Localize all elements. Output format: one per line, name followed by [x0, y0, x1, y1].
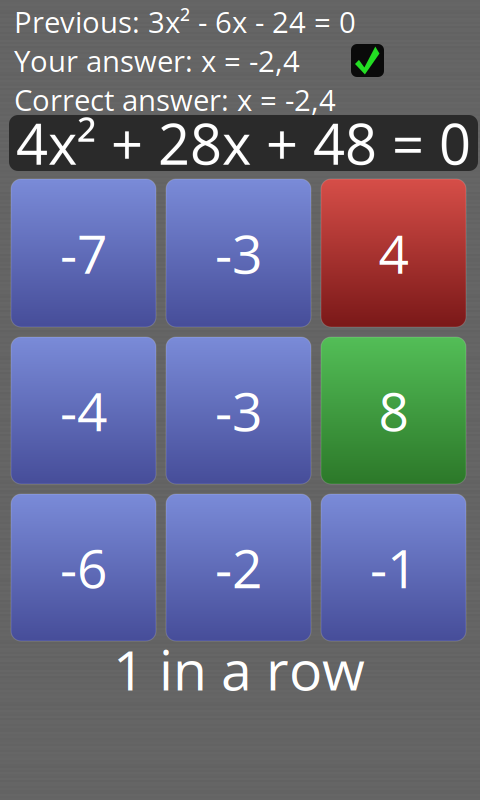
button[interactable]: -3 [166, 179, 311, 327]
staticText: -1 [370, 531, 417, 604]
button[interactable]: -7 [11, 179, 156, 327]
staticText: Previous: 3x² - 6x - 24 = 0 [14, 1, 356, 41]
staticText: -7 [60, 217, 107, 289]
staticText: 8 [378, 374, 408, 447]
button[interactable]: -1 [321, 494, 466, 641]
button[interactable]: -2 [166, 494, 311, 641]
staticText: -3 [215, 374, 262, 447]
staticText: 4x² + 28x + 48 = 0 [16, 105, 471, 181]
staticText: -4 [60, 374, 107, 447]
staticText: 1 in a row [113, 631, 365, 707]
button[interactable]: 4 [321, 179, 466, 327]
button[interactable]: 8 [321, 337, 466, 484]
button[interactable]: -3 [166, 337, 311, 484]
staticText: 4 [378, 217, 408, 289]
button[interactable]: -6 [11, 494, 156, 641]
staticText: -2 [215, 531, 262, 604]
staticText: Your answer: x = -2,4 [14, 40, 300, 80]
staticText: -3 [215, 217, 262, 289]
button[interactable]: -4 [11, 337, 156, 484]
staticText: -6 [60, 531, 107, 604]
staticText: Correct answer: x = -2,4 [14, 79, 336, 119]
